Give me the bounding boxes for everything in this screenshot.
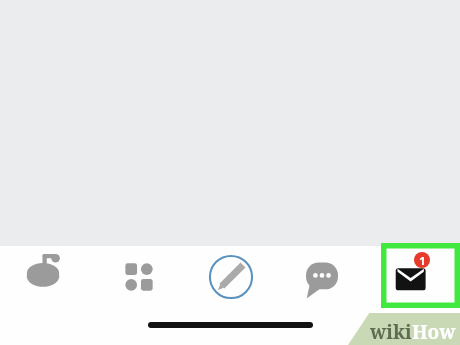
button[interactable]: Inbox, 1 unread message [378,246,448,308]
staticText: How [412,319,456,345]
staticText: 1 [419,253,426,268]
button[interactable]: Home [8,246,78,308]
button[interactable]: Communities [104,246,174,308]
button[interactable]: Chat [287,246,357,308]
button[interactable]: Create post [196,246,266,308]
staticText: wiki [370,319,412,345]
